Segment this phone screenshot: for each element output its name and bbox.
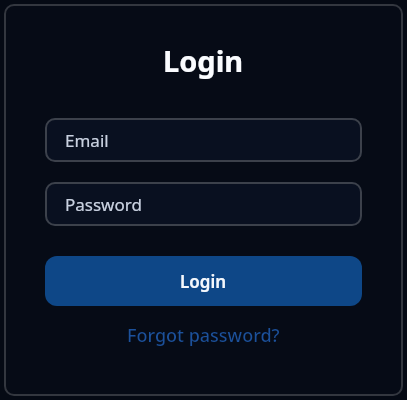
staticText: Email — [65, 129, 109, 152]
button[interactable]: Login — [45, 256, 362, 306]
button[interactable]: Password — [45, 182, 362, 226]
button[interactable]: Email — [45, 118, 362, 162]
staticText: Password — [65, 193, 142, 216]
button[interactable]: Forgot password? — [127, 323, 280, 348]
staticText: Login — [180, 270, 227, 293]
staticText: Login — [163, 41, 244, 80]
